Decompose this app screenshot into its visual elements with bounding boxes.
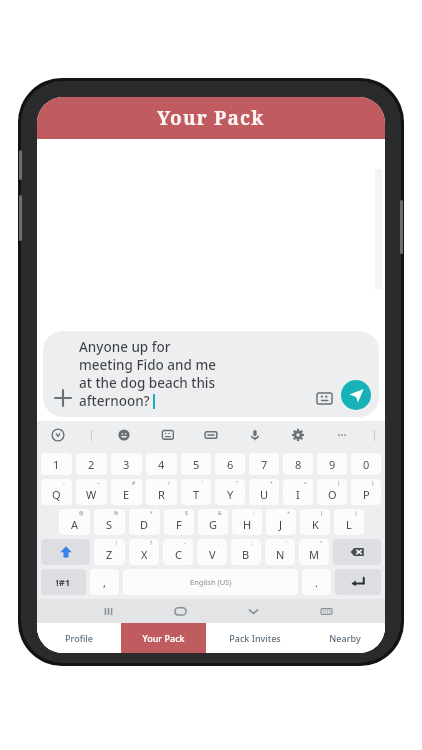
staticText: + (287, 510, 290, 517)
button[interactable]: / (146, 479, 177, 505)
button[interactable]: Clipboard (200, 424, 222, 446)
staticText: Y (227, 487, 234, 502)
staticText: A (71, 517, 79, 532)
button[interactable]: Home (144, 599, 217, 623)
button[interactable]: + (266, 509, 296, 535)
button[interactable]: ; (231, 539, 261, 565)
button[interactable]: Recent apps (72, 599, 144, 623)
button[interactable]: ~ (76, 479, 107, 505)
staticText: Profile (65, 632, 93, 644)
button[interactable]: - (232, 509, 262, 535)
button[interactable]: Add attachment (51, 386, 75, 410)
button[interactable]: Stickers (312, 386, 336, 410)
button[interactable]: 9 (317, 453, 347, 475)
button[interactable]: GIF (157, 424, 179, 446)
button[interactable]: % (94, 509, 125, 535)
staticText: 4 (158, 457, 165, 472)
staticText: at the dog beach this (79, 374, 216, 392)
button[interactable]: 4 (146, 453, 177, 475)
button[interactable]: !#1 (41, 569, 86, 595)
staticText: , (103, 575, 106, 590)
button[interactable]: ' (265, 539, 295, 565)
staticText: C (175, 547, 182, 562)
button[interactable]: Shift (41, 539, 90, 565)
button[interactable]: ? (129, 539, 159, 565)
staticText: ' (286, 540, 288, 547)
staticText: 7 (261, 457, 268, 472)
button[interactable]: Your Pack (121, 623, 206, 653)
button[interactable]: Add attachment (43, 331, 379, 417)
button[interactable]: = (283, 479, 313, 505)
button[interactable]: + (249, 479, 279, 505)
staticText: S (106, 517, 113, 532)
button[interactable]: 6 (215, 453, 245, 475)
button[interactable]: - (163, 539, 193, 565)
button[interactable]: Enter (335, 569, 381, 595)
button[interactable]: 1 (41, 453, 72, 475)
staticText: ' (202, 480, 204, 487)
button[interactable]: Profile (37, 623, 121, 653)
button[interactable]: 3 (111, 453, 142, 475)
staticText: 6 (227, 457, 234, 472)
staticText: B (242, 547, 250, 562)
staticText: 2 (88, 457, 95, 472)
button[interactable]: " (299, 539, 329, 565)
button[interactable]: Pack Invites (206, 623, 304, 653)
button[interactable]: 0 (351, 453, 381, 475)
staticText: - (63, 480, 65, 487)
button[interactable]: Settings (287, 424, 309, 446)
staticText: L (346, 517, 352, 532)
button[interactable]: , (90, 569, 119, 595)
button[interactable]: # (111, 479, 142, 505)
button[interactable]: 8 (283, 453, 313, 475)
button[interactable]: $ (164, 509, 194, 535)
button[interactable]: Emoji (113, 424, 135, 446)
button[interactable]: " (215, 479, 245, 505)
button[interactable]: 2 (76, 453, 107, 475)
staticText: & (218, 510, 222, 517)
staticText: 0 (363, 457, 370, 472)
staticText: R (158, 487, 165, 502)
staticText: ( (321, 510, 323, 517)
staticText: * (150, 510, 153, 517)
staticText: = (304, 480, 307, 487)
staticText: 9 (329, 457, 336, 472)
staticText: 5 (193, 457, 200, 472)
button[interactable]: Send (341, 380, 371, 410)
button[interactable]: @ (59, 509, 90, 535)
button[interactable]: ( (300, 509, 330, 535)
staticText: V (209, 547, 216, 562)
button[interactable]: ( (317, 479, 347, 505)
button[interactable]: More options (331, 424, 353, 446)
button[interactable]: Nearby (304, 623, 385, 653)
button[interactable]: ' (181, 479, 211, 505)
button[interactable]: : (197, 539, 227, 565)
button[interactable]: Voice input (244, 424, 266, 446)
button[interactable]: English (US) (123, 569, 298, 595)
staticText: X (141, 547, 148, 562)
button[interactable]: 5 (181, 453, 211, 475)
staticText: - (184, 540, 186, 547)
staticText: % (114, 510, 119, 517)
staticText: ; (252, 540, 254, 547)
button[interactable]: ) (351, 479, 381, 505)
button[interactable]: - (41, 479, 72, 505)
button[interactable]: Close keyboard (217, 599, 290, 623)
staticText: J (279, 517, 283, 532)
button[interactable]: Backspace (333, 539, 381, 565)
button[interactable]: & (198, 509, 228, 535)
staticText: H (243, 517, 252, 532)
staticText: U (260, 487, 269, 502)
staticText: Nearby (329, 632, 361, 644)
staticText: K (312, 517, 319, 532)
button[interactable]: 7 (249, 453, 279, 475)
button[interactable]: . (302, 569, 331, 595)
button[interactable]: ! (94, 539, 125, 565)
staticText: meeting Fido and me (79, 356, 216, 374)
staticText: E (123, 487, 130, 502)
button[interactable]: * (129, 509, 160, 535)
button[interactable]: Switch keyboard (290, 599, 363, 623)
staticText: P (363, 487, 370, 502)
button[interactable]: Gboard (47, 424, 69, 446)
button[interactable]: ) (334, 509, 364, 535)
